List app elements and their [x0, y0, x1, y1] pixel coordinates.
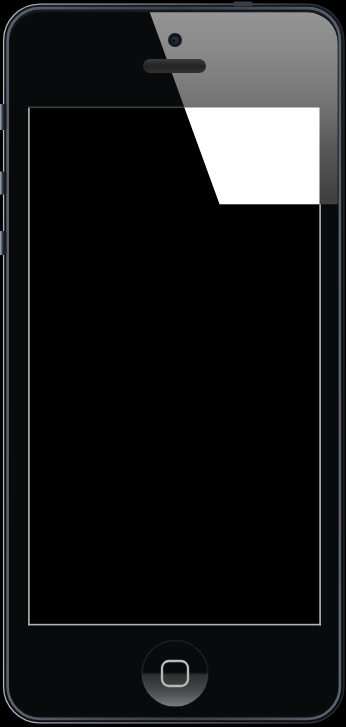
- button[interactable]: Phone device mockup: [0, 0, 346, 727]
